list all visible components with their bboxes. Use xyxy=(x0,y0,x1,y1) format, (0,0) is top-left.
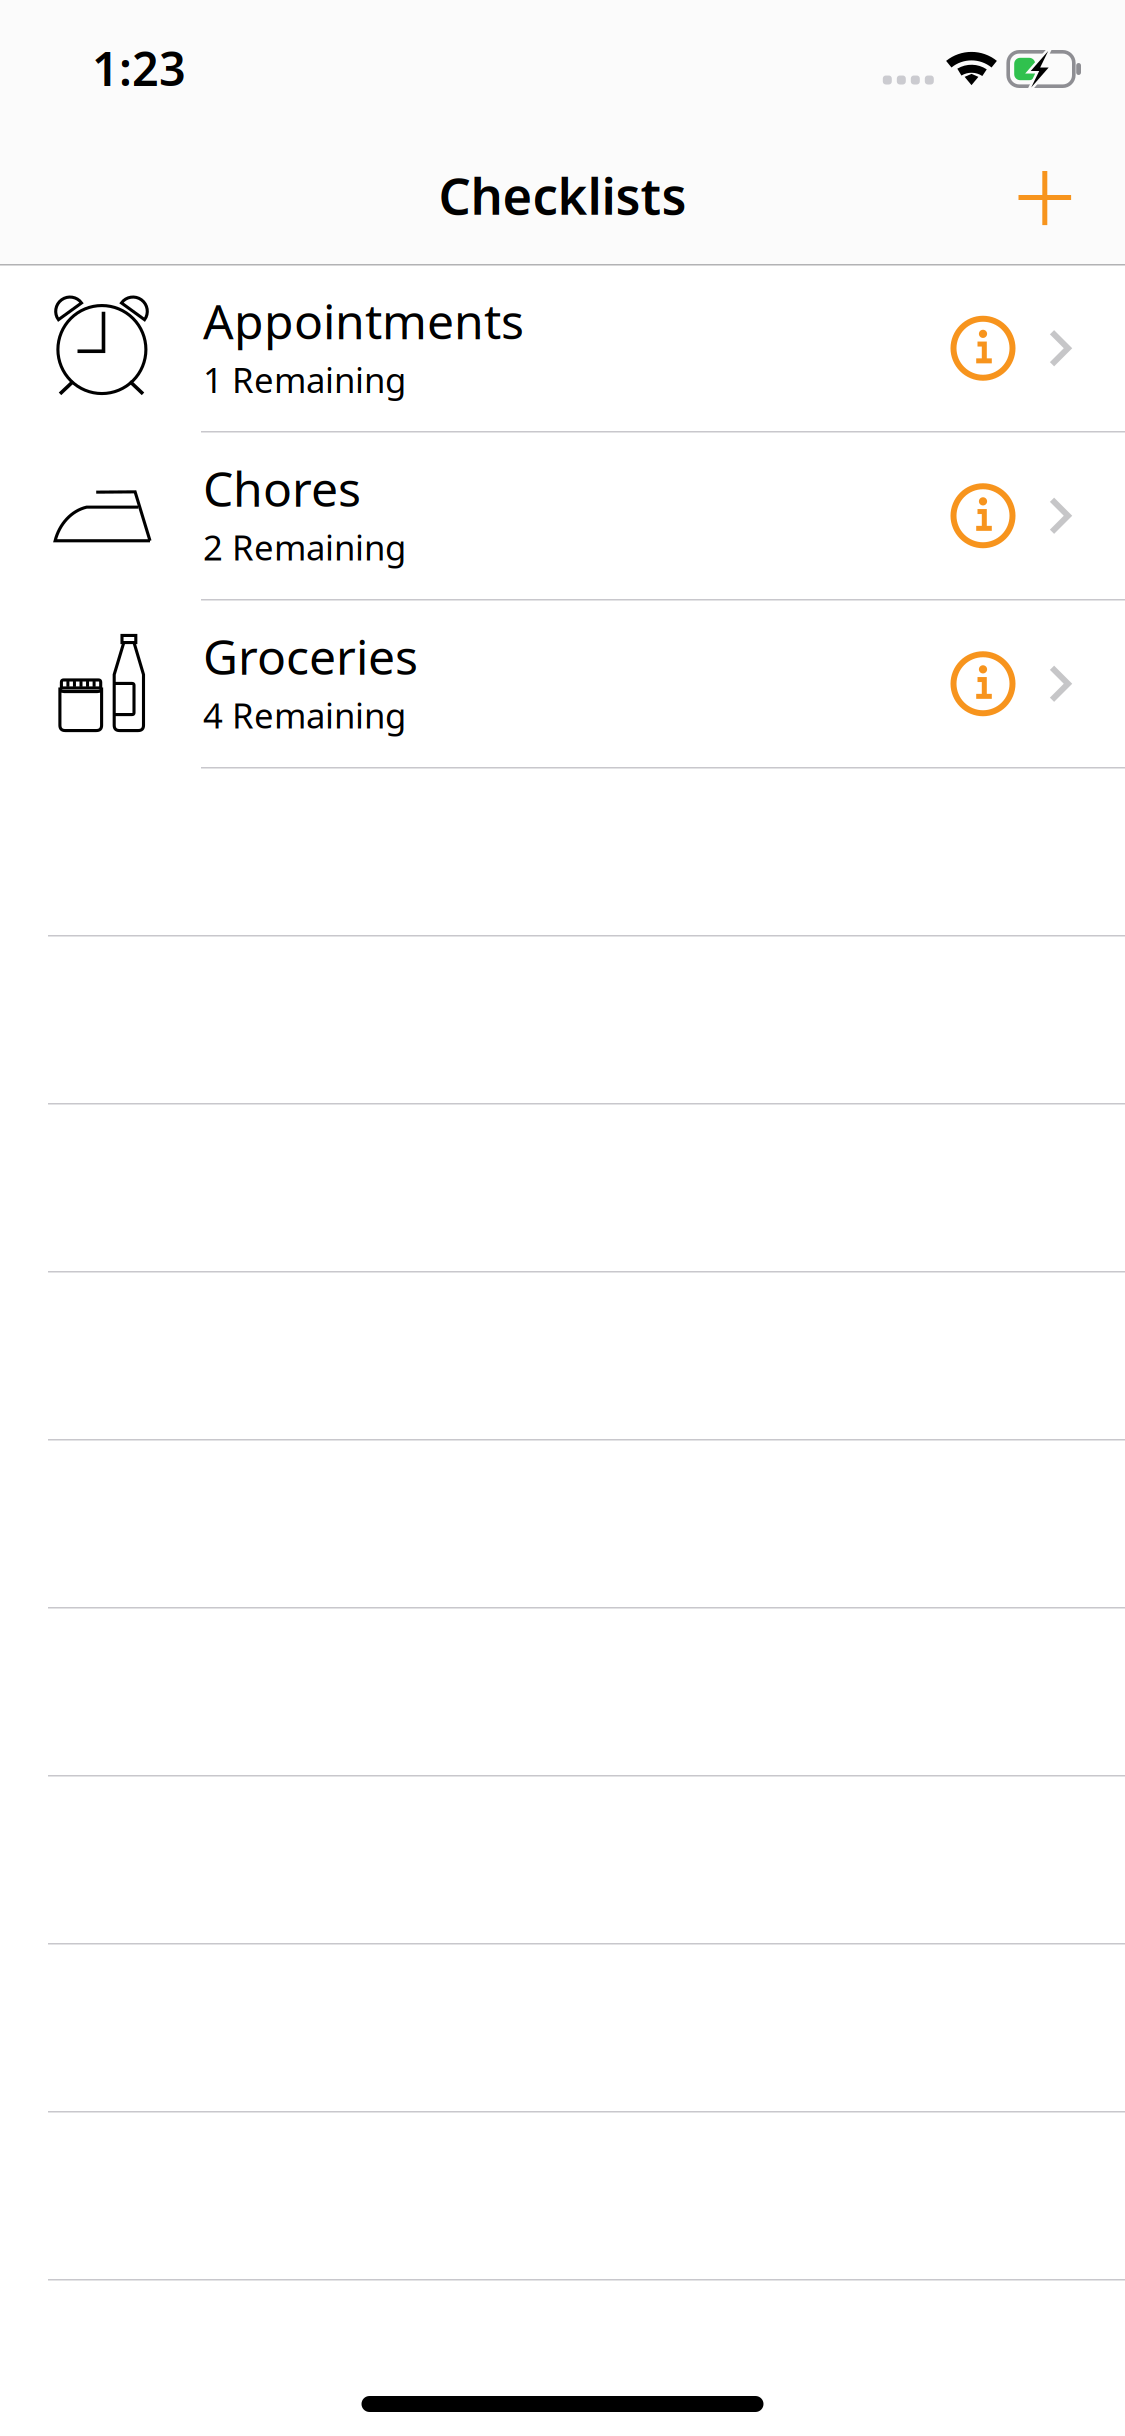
button[interactable]: Add checklist xyxy=(1001,154,1089,242)
staticText: Appointments xyxy=(203,289,524,353)
button[interactable]: Groceries xyxy=(0,600,1125,767)
staticText: Groceries xyxy=(203,624,418,688)
staticText: 1 Remaining xyxy=(203,357,406,403)
staticText: 2 Remaining xyxy=(203,524,406,570)
staticText: Checklists xyxy=(438,161,686,229)
staticText: 4 Remaining xyxy=(203,692,406,738)
button[interactable]: Appointments xyxy=(0,265,1125,431)
button[interactable]: Chores xyxy=(0,432,1125,599)
staticText: Chores xyxy=(203,456,361,520)
staticText: 1:23 xyxy=(92,37,186,99)
